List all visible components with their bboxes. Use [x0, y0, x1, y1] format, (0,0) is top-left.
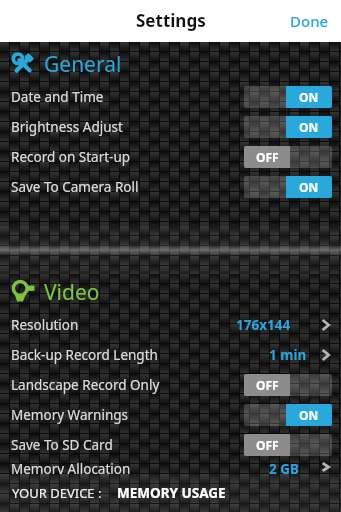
staticText: Done	[290, 11, 329, 31]
button[interactable]: Switch off	[244, 434, 332, 456]
staticText: OFF	[256, 377, 279, 393]
button[interactable]: Brightness Adjust	[0, 112, 341, 142]
button[interactable]: Switch on	[244, 86, 332, 108]
staticText: ON	[299, 89, 319, 105]
button[interactable]: Save To SD Card	[0, 430, 341, 460]
button[interactable]: Resolution	[0, 310, 341, 340]
button[interactable]: Switch on	[244, 116, 332, 138]
button[interactable]: Switch on	[244, 176, 332, 198]
staticText: MEMORY USAGE	[117, 484, 226, 502]
button[interactable]: Record on Start-up	[0, 142, 341, 172]
button[interactable]: Back-up Record Length	[0, 340, 341, 370]
staticText: Settings	[136, 9, 206, 32]
button[interactable]: Done	[278, 2, 341, 40]
staticText: ON	[299, 407, 319, 423]
staticText: Video	[44, 278, 100, 307]
staticText: Save To Camera Roll	[11, 178, 139, 196]
button[interactable]: Date and Time	[0, 82, 341, 112]
staticText: General	[44, 50, 122, 79]
staticText: Record on Start-up	[11, 148, 131, 166]
staticText: 2 GB	[269, 460, 299, 474]
button[interactable]: Switch on	[244, 404, 332, 426]
staticText: Save To SD Card	[11, 436, 113, 454]
button[interactable]: Switch off	[244, 146, 332, 168]
staticText: Landscape Record Only	[11, 376, 160, 394]
staticText: OFF	[256, 437, 279, 453]
staticText: 176x144	[236, 316, 291, 334]
button[interactable]: Save To Camera Roll	[0, 172, 341, 202]
staticText: 1 min	[269, 346, 307, 364]
button[interactable]: Memory Warnings	[0, 400, 341, 430]
button[interactable]: Memory Allocation	[0, 460, 341, 474]
staticText: Resolution	[11, 316, 79, 334]
staticText: OFF	[256, 149, 279, 165]
staticText: Date and Time	[11, 88, 104, 106]
staticText: Back-up Record Length	[11, 346, 158, 364]
staticText: Memory Warnings	[11, 406, 128, 424]
staticText: ON	[299, 179, 319, 195]
button[interactable]: Landscape Record Only	[0, 370, 341, 400]
staticText: ON	[299, 119, 319, 135]
staticText: YOUR DEVICE :	[12, 484, 102, 502]
button[interactable]: Switch off	[244, 374, 332, 396]
staticText: Brightness Adjust	[11, 118, 123, 136]
staticText: Memory Allocation	[11, 460, 131, 474]
